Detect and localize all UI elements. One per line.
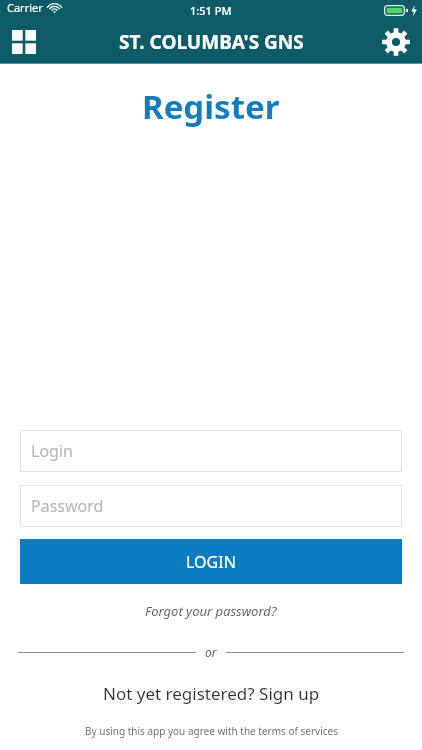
button[interactable]: Menu [0,20,48,64]
staticText: Password [31,495,104,517]
button[interactable]: LOGIN [20,539,402,584]
button[interactable]: Not yet registered? Sign up [0,682,422,705]
staticText: LOGIN [186,551,236,573]
staticText: Login [31,440,73,462]
staticText: Carrier [7,0,43,15]
button[interactable]: Password [20,485,402,527]
button[interactable]: Settings [370,20,422,64]
staticText: Forgot your password? [145,602,277,620]
staticText: By using this app you agree with the ter… [85,724,338,738]
staticText: Not yet registered? Sign up [103,682,320,705]
button[interactable]: Login [20,430,402,472]
staticText: or [205,644,217,660]
staticText: 1:51 PM [190,3,232,18]
staticText: Register [142,84,280,129]
button[interactable]: Forgot your password? [0,602,422,620]
staticText: ST. COLUMBA'S GNS [119,29,304,55]
